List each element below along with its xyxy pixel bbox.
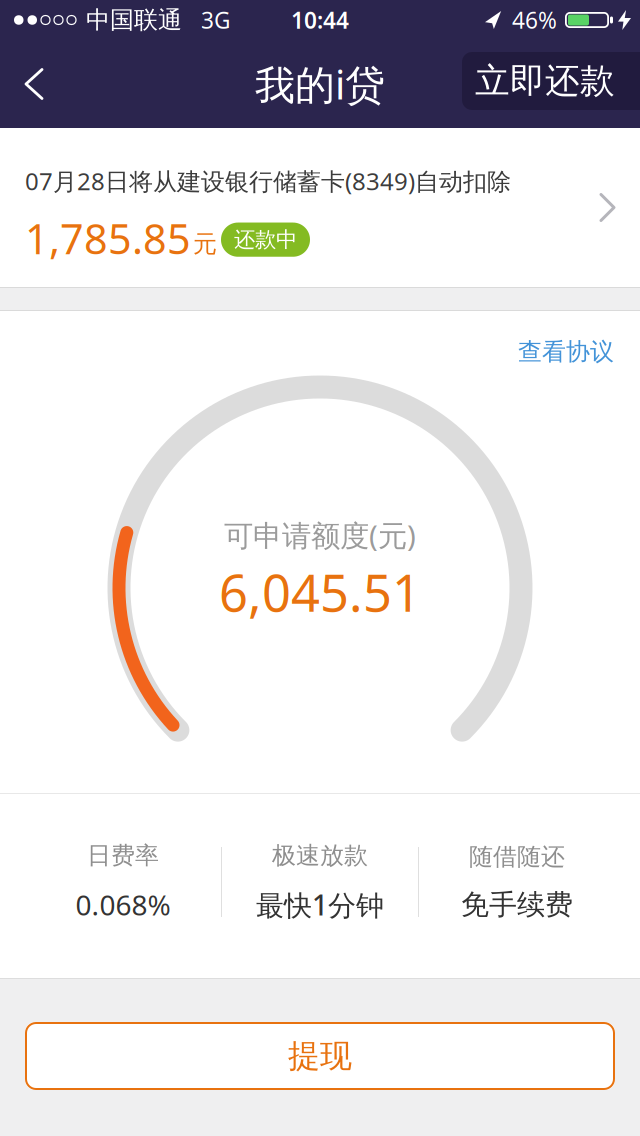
staticText: 查看协议 [518, 337, 614, 366]
staticText: 日费率 [87, 841, 159, 870]
button[interactable]: 提现 [25, 1022, 615, 1090]
staticText: 免手续费 [461, 887, 573, 922]
staticText: 10:44 [291, 5, 349, 35]
staticText: 07月28日将从建设银行储蓄卡(8349)自动扣除 [25, 165, 511, 197]
staticText: 我的i贷 [255, 57, 385, 110]
staticText: 6,045.51 [219, 558, 421, 626]
staticText: 46% [512, 5, 557, 35]
staticText: 极速放款 [272, 841, 368, 870]
staticText: 立即还款 [475, 60, 615, 102]
staticText: 最快1分钟 [256, 886, 384, 923]
staticText: 随借随还 [469, 842, 565, 872]
staticText: 可申请额度(元) [224, 515, 416, 554]
button[interactable]: Back [0, 45, 62, 122]
staticText: 3G [201, 5, 231, 35]
staticText: 中国联通 [86, 5, 182, 35]
staticText: 1,785.85 [25, 211, 191, 266]
button[interactable]: 07月28日将从建设银行储蓄卡(8349)自动扣除 [0, 128, 640, 287]
staticText: 元 [193, 229, 217, 259]
button[interactable]: 查看协议 [518, 311, 640, 366]
staticText: 0.068% [75, 886, 170, 923]
button[interactable]: 立即还款 [462, 52, 640, 110]
staticText: 还款中 [234, 227, 297, 253]
staticText: 提现 [288, 1036, 352, 1076]
